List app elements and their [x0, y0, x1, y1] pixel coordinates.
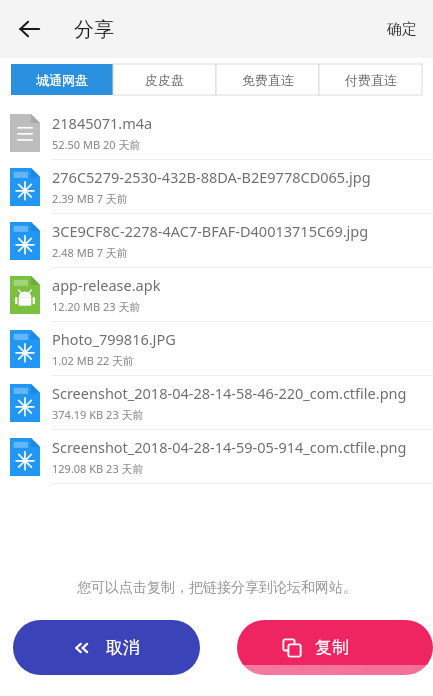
button[interactable]: Screenshot_2018-04-28-14-59-05-914_com.c…: [0, 430, 433, 484]
button[interactable]: 城通网盘: [11, 64, 113, 95]
staticText: 374.19 KB 23 天前: [52, 407, 144, 422]
button[interactable]: Photo_799816.JPG: [0, 322, 433, 376]
staticText: Photo_799816.JPG: [52, 329, 176, 349]
staticText: app-release.apk: [52, 275, 161, 295]
staticText: 分享: [74, 17, 114, 42]
staticText: 您可以点击复制，把链接分享到论坛和网站。: [77, 579, 357, 597]
staticText: Screenshot_2018-04-28-14-59-05-914_com.c…: [52, 437, 407, 457]
staticText: 付费直连: [345, 72, 397, 88]
button[interactable]: 免费直连: [216, 64, 319, 95]
staticText: 复制: [315, 637, 349, 658]
button[interactable]: Screenshot_2018-04-28-14-58-46-220_com.c…: [0, 376, 433, 430]
button[interactable]: Back: [10, 9, 50, 49]
button[interactable]: app-release.apk: [0, 268, 433, 322]
staticText: 城通网盘: [36, 72, 88, 88]
button[interactable]: 皮皮盘: [113, 64, 216, 95]
staticText: 确定: [387, 20, 417, 39]
staticText: Screenshot_2018-04-28-14-58-46-220_com.c…: [52, 383, 407, 403]
button[interactable]: 确定: [371, 0, 433, 58]
button[interactable]: 取消: [13, 620, 200, 675]
staticText: 276C5279-2530-432B-88DA-B2E9778CD065.jpg: [52, 167, 371, 187]
button[interactable]: 276C5279-2530-432B-88DA-B2E9778CD065.jpg: [0, 160, 433, 214]
button[interactable]: 复制: [237, 620, 433, 675]
button[interactable]: 3CE9CF8C-2278-4AC7-BFAF-D40013715C69.jpg: [0, 214, 433, 268]
staticText: 1.02 MB 22 天前: [52, 353, 135, 368]
staticText: 2.39 MB 7 天前: [52, 191, 128, 206]
staticText: 取消: [106, 637, 140, 658]
staticText: 129.08 KB 23 天前: [52, 461, 144, 476]
staticText: 12.20 MB 23 天前: [52, 299, 141, 314]
staticText: 3CE9CF8C-2278-4AC7-BFAF-D40013715C69.jpg: [52, 221, 369, 241]
button[interactable]: 21845071.m4a: [0, 106, 433, 160]
staticText: 免费直连: [242, 72, 294, 88]
button[interactable]: 付费直连: [319, 64, 422, 95]
staticText: 21845071.m4a: [52, 113, 153, 133]
staticText: 52.50 MB 20 天前: [52, 137, 141, 152]
staticText: 2.48 MB 7 天前: [52, 245, 128, 260]
staticText: 皮皮盘: [145, 72, 184, 88]
